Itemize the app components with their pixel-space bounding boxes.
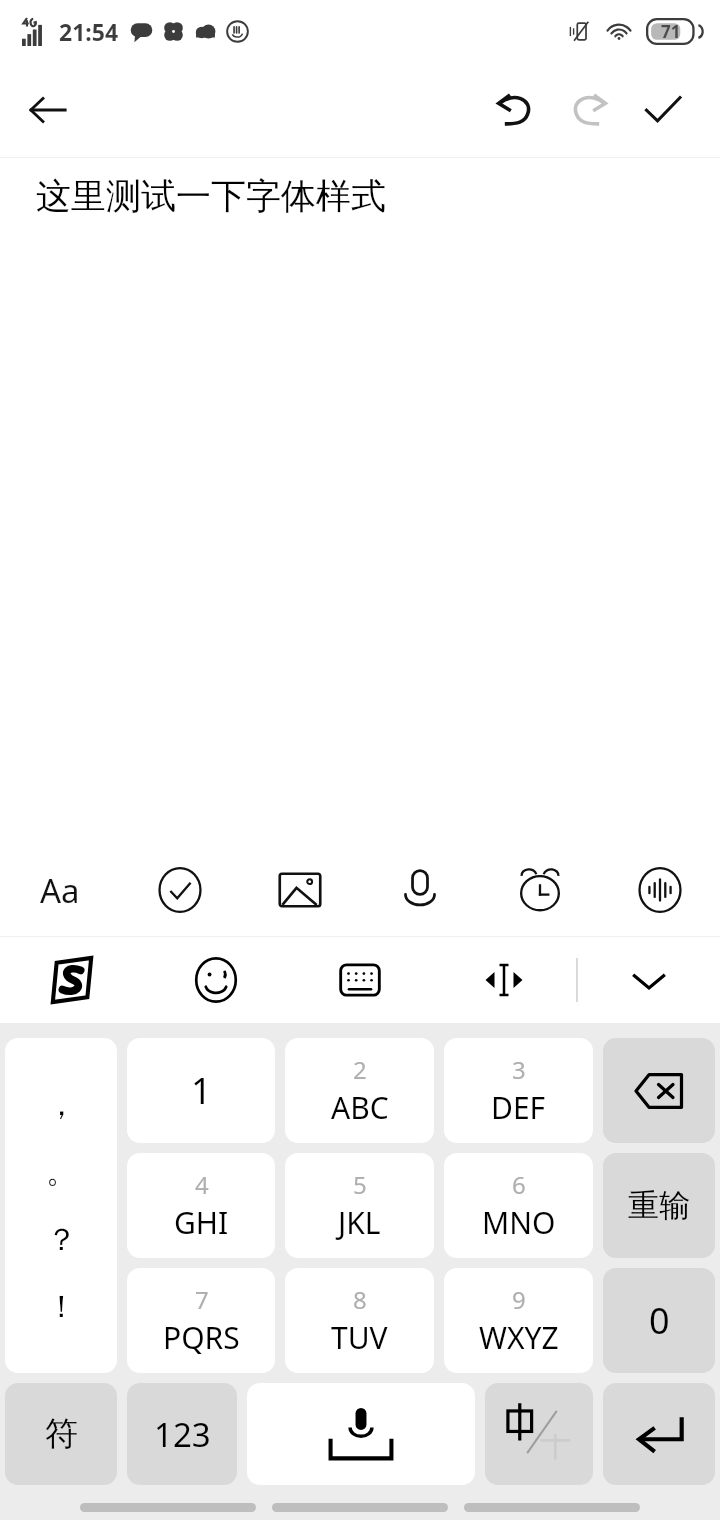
staticText: WXYZ [479,1317,559,1358]
staticText: 。 [46,1152,77,1191]
staticText: 7 [195,1283,209,1316]
button[interactable]: 8 TUV [285,1268,434,1373]
button[interactable]: Hide keyboard [578,937,720,1023]
button[interactable]: Voice input [360,844,480,936]
button[interactable]: Emoji [144,937,288,1023]
button[interactable]: Enter [603,1383,715,1485]
button[interactable]: 1 [127,1038,275,1143]
staticText: 符 [45,1413,78,1455]
staticText: ？ [46,1220,77,1259]
button[interactable]: Backspace [603,1038,715,1143]
button[interactable]: Insert image [240,844,360,936]
button[interactable]: 2 ABC [285,1038,434,1143]
staticText: 9 [512,1283,526,1316]
staticText: DEF [491,1087,546,1128]
staticText: ABC [331,1087,389,1128]
staticText: 3 [512,1053,526,1086]
button[interactable]: Back [10,72,86,148]
staticText: 4 [195,1168,209,1201]
button[interactable]: Done [626,73,700,147]
staticText: 8 [353,1283,367,1316]
button[interactable]: 7 PQRS [127,1268,275,1373]
button[interactable]: Move cursor [432,937,576,1023]
button[interactable]: Sogou menu [0,937,144,1023]
staticText: 重输 [628,1186,690,1225]
button[interactable]: 符号 [5,1383,117,1485]
staticText: 0 [649,1296,670,1345]
button[interactable]: 123 [127,1383,237,1485]
button[interactable]: Recording [600,844,720,936]
button[interactable]: 9 WXYZ [444,1268,593,1373]
button[interactable]: 空格 语音输入 [247,1383,475,1485]
staticText: JKL [338,1202,381,1243]
staticText: ！ [46,1287,77,1326]
staticText: MNO [482,1202,556,1243]
staticText: 1 [191,1066,212,1115]
staticText: 这里测试一下字体样式 [36,174,386,218]
staticText: 2 [353,1053,367,1086]
staticText: TUV [331,1317,388,1358]
button[interactable]: 标点符号 [5,1038,117,1373]
button[interactable]: Keyboard layout [288,937,432,1023]
button[interactable]: 3 DEF [444,1038,593,1143]
staticText: GHI [174,1202,229,1243]
button[interactable]: 重输 [603,1153,715,1258]
staticText: 71 [661,20,681,43]
staticText: Aa [40,868,80,913]
staticText: 123 [154,1412,211,1457]
button[interactable]: Checklist [120,844,240,936]
staticText: 21:54 [59,16,119,47]
button[interactable]: 0 [603,1268,715,1373]
button[interactable]: 6 MNO [444,1153,593,1258]
button[interactable]: Reminder [480,844,600,936]
button[interactable]: Undo [478,73,552,147]
button[interactable]: 4 GHI [127,1153,275,1258]
staticText: ， [46,1085,77,1124]
staticText: PQRS [163,1317,240,1358]
button[interactable]: 5 JKL [285,1153,434,1258]
button[interactable]: 中英文切换 [485,1383,593,1485]
button[interactable]: Redo [552,73,626,147]
staticText: 5 [353,1168,367,1201]
button[interactable]: Text style [0,844,120,936]
staticText: 6 [512,1168,526,1201]
